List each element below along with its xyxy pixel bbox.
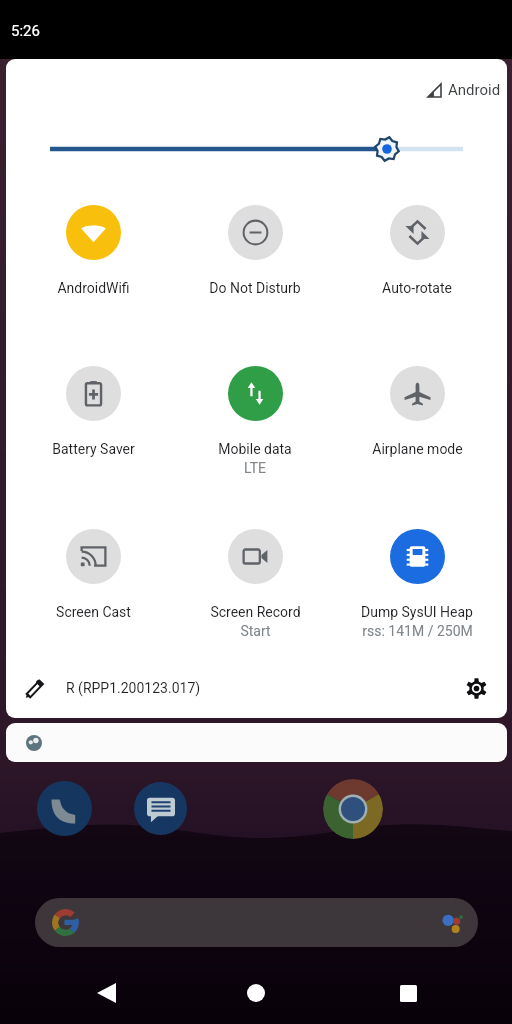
button[interactable]: Screen Record [174, 519, 336, 647]
button[interactable]: Edit tiles [17, 670, 53, 706]
button[interactable]: Recents [382, 967, 434, 1019]
button[interactable]: Phone [37, 781, 92, 836]
staticText: Start [240, 623, 271, 639]
staticText: R (RPP1.200123.017) [66, 680, 201, 696]
staticText: AndroidWifi [57, 280, 130, 296]
button[interactable]: Back [80, 967, 132, 1019]
staticText: Screen Record [210, 604, 301, 620]
button[interactable]: Mobile data [174, 356, 336, 484]
button[interactable]: Search [35, 898, 478, 947]
staticText: Screen Cast [56, 604, 131, 620]
button[interactable]: Screen Cast [12, 519, 174, 647]
staticText: LTE [244, 460, 266, 476]
button[interactable]: Settings [458, 670, 494, 706]
button[interactable]: Battery Saver [12, 356, 174, 484]
staticText: Auto-rotate [382, 280, 452, 296]
staticText: Battery Saver [52, 441, 135, 457]
button[interactable]: Messages [134, 782, 187, 835]
button[interactable]: Home [230, 967, 282, 1019]
button[interactable]: Do Not Disturb [174, 195, 336, 323]
button[interactable]: AndroidWifi [12, 195, 174, 323]
staticText: Do Not Disturb [209, 280, 301, 296]
staticText: Dump SysUI Heap [361, 604, 473, 620]
button[interactable]: Chrome [323, 779, 383, 839]
staticText: Android [448, 81, 501, 99]
button[interactable]: Notification [6, 723, 507, 762]
staticText: Mobile data [218, 441, 292, 457]
staticText: Airplane mode [372, 441, 463, 457]
staticText: rss: 141M / 250M [362, 623, 473, 639]
button[interactable]: Airplane mode [336, 356, 498, 484]
staticText: 5:26 [11, 22, 40, 40]
button[interactable]: Auto-rotate [336, 195, 498, 323]
button[interactable]: Dump SysUI Heap [336, 519, 498, 647]
